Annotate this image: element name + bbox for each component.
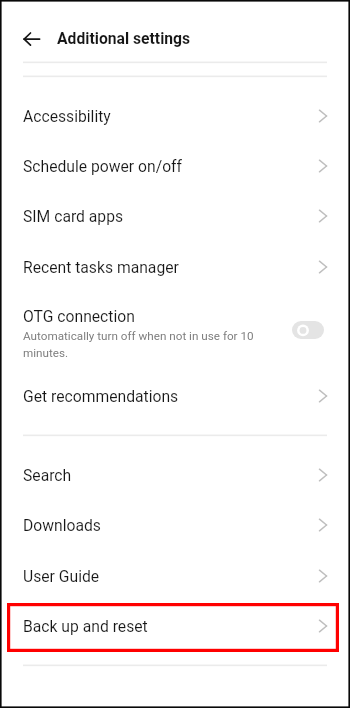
button[interactable]: OTG connection, off xyxy=(292,321,324,339)
button[interactable]: Back xyxy=(22,28,44,50)
staticText: Recent tasks manager xyxy=(23,258,179,276)
button[interactable]: User Guide xyxy=(0,551,350,601)
button[interactable]: Back up and reset xyxy=(0,601,350,651)
staticText: Search xyxy=(23,466,72,484)
staticText: Back up and reset xyxy=(23,617,148,635)
staticText: Downloads xyxy=(23,516,101,534)
button[interactable]: Recent tasks manager xyxy=(0,242,350,292)
staticText: Schedule power on/off xyxy=(23,157,183,175)
staticText: Get recommendations xyxy=(23,387,179,405)
button[interactable]: OTG connection xyxy=(0,292,350,370)
button[interactable]: SIM card apps xyxy=(0,191,350,241)
button[interactable]: Downloads xyxy=(0,500,350,550)
staticText: Accessibility xyxy=(23,107,111,125)
staticText: User Guide xyxy=(23,567,100,585)
staticText: Automatically turn off when not in use f… xyxy=(23,329,255,360)
button[interactable]: Get recommendations xyxy=(0,371,350,421)
button[interactable]: Search xyxy=(0,450,350,500)
staticText: Additional settings xyxy=(57,29,191,47)
button[interactable]: Schedule power on/off xyxy=(0,141,350,191)
staticText: SIM card apps xyxy=(23,207,124,225)
button[interactable]: Accessibility xyxy=(0,91,350,141)
staticText: OTG connection xyxy=(23,307,135,325)
